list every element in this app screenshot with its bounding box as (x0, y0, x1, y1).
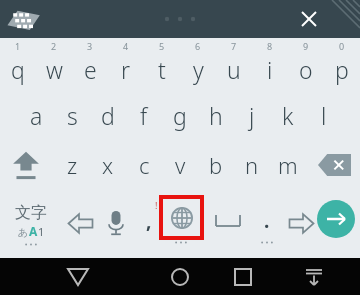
staticText: l (321, 100, 327, 131)
button[interactable]: z (54, 140, 90, 190)
staticText: c (139, 150, 150, 180)
staticText: o (299, 54, 313, 85)
button[interactable]: v (162, 140, 198, 190)
button[interactable]: 5 (144, 38, 180, 90)
staticText: a (30, 100, 43, 131)
button[interactable]: s (54, 90, 90, 140)
button[interactable]: Hide keyboard (290, 258, 338, 295)
button[interactable]: Home (156, 258, 204, 295)
button[interactable]: Enter (317, 200, 355, 238)
button[interactable]: g (162, 90, 198, 140)
staticText: 9 (303, 40, 309, 52)
staticText: 3 (87, 40, 93, 52)
staticText: j (249, 100, 255, 131)
staticText: 2 (51, 40, 57, 52)
button[interactable]: Cursor left (62, 205, 98, 241)
button[interactable]: Voice input (98, 205, 134, 241)
button[interactable]: 1 (0, 38, 36, 90)
button[interactable]: 2 (36, 38, 72, 90)
staticText: z (67, 150, 78, 180)
button[interactable]: 3 (72, 38, 108, 90)
button[interactable]: Cursor right (283, 205, 319, 241)
button[interactable]: a (18, 90, 54, 140)
staticText: w (46, 54, 63, 85)
button[interactable]: b (198, 140, 234, 190)
staticText: 8 (267, 40, 273, 52)
button[interactable]: Backspace (308, 140, 360, 190)
button[interactable]: d (90, 90, 126, 140)
staticText: ! (155, 199, 158, 211)
button[interactable]: l (306, 90, 342, 140)
staticText: . (264, 208, 270, 234)
staticText: 7 (231, 40, 237, 52)
staticText: 1 (38, 224, 45, 239)
staticText: 6 (195, 40, 201, 52)
button[interactable]: 0 (324, 38, 360, 90)
staticText: q (11, 54, 25, 85)
button[interactable]: 4 (108, 38, 144, 90)
button[interactable]: Keyboard settings (6, 7, 42, 33)
staticText: d (101, 100, 115, 131)
button[interactable]: f (126, 90, 162, 140)
staticText: 1 (15, 40, 21, 52)
staticText: 4 (123, 40, 129, 52)
staticText: 文字 (15, 203, 47, 223)
button[interactable]: x (90, 140, 126, 190)
staticText: b (209, 150, 223, 180)
staticText: 0 (339, 40, 345, 52)
button[interactable]: 8 (252, 38, 288, 90)
button[interactable]: h (198, 90, 234, 140)
staticText: f (140, 100, 148, 131)
button[interactable]: Recent apps (219, 258, 267, 295)
staticText: p (335, 54, 349, 85)
staticText: t (158, 54, 166, 85)
staticText: r (121, 54, 131, 85)
button[interactable]: Back (54, 258, 102, 295)
staticText: , (146, 208, 152, 234)
button[interactable]: Space (204, 203, 252, 237)
staticText: e (84, 54, 97, 85)
button[interactable]: . (250, 199, 284, 245)
button[interactable]: 文字 (4, 195, 58, 247)
button[interactable]: k (270, 90, 306, 140)
staticText: x (102, 150, 114, 180)
staticText: s (67, 100, 78, 131)
staticText: n (245, 150, 259, 180)
button[interactable]: 9 (288, 38, 324, 90)
staticText: i (267, 54, 273, 85)
staticText: u (227, 54, 241, 85)
button[interactable]: Change keyboard language (161, 197, 202, 238)
button[interactable]: Close (294, 4, 324, 34)
staticText: y (193, 54, 204, 85)
button[interactable]: ! (134, 199, 164, 245)
staticText: A (29, 223, 38, 239)
staticText: 5 (159, 40, 165, 52)
button[interactable]: n (234, 140, 270, 190)
button[interactable]: 6 (180, 38, 216, 90)
staticText: k (282, 100, 294, 131)
staticText: v (175, 150, 186, 180)
staticText: g (173, 100, 187, 131)
button[interactable]: c (126, 140, 162, 190)
staticText: h (209, 100, 223, 131)
button[interactable]: m (270, 140, 306, 190)
button[interactable]: j (234, 90, 270, 140)
button[interactable]: 7 (216, 38, 252, 90)
button[interactable]: Shift (0, 140, 52, 190)
staticText: m (278, 150, 298, 180)
staticText: あ (18, 226, 29, 239)
